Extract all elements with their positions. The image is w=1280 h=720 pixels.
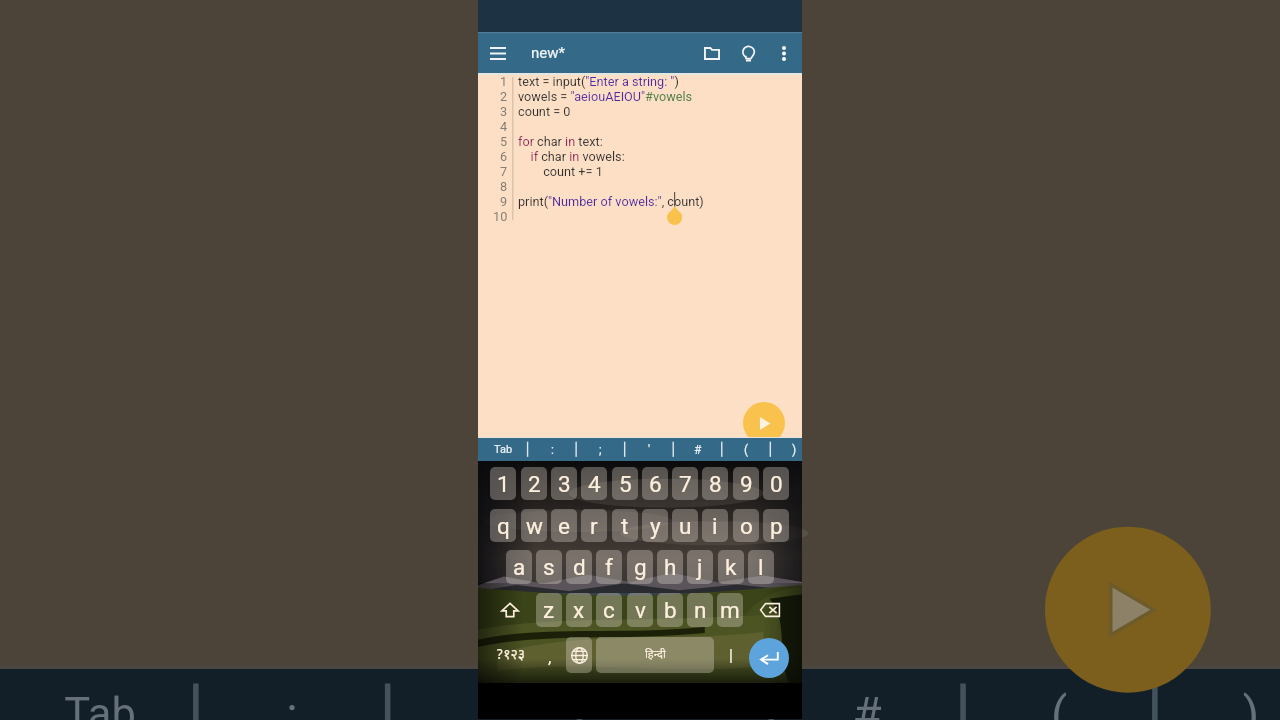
button[interactable]: p <box>763 509 789 542</box>
staticText: 8 <box>709 471 722 497</box>
button[interactable]: q <box>490 509 516 542</box>
button[interactable]: c <box>596 593 622 627</box>
staticText: z <box>543 597 555 623</box>
button[interactable]: l <box>748 550 774 584</box>
button[interactable]: ) <box>770 438 819 461</box>
staticText: h <box>664 554 677 580</box>
button[interactable]: d <box>566 550 592 584</box>
button[interactable]: 8 <box>702 467 728 500</box>
staticText: : <box>196 687 388 720</box>
button[interactable]: ( <box>722 438 771 461</box>
button[interactable]: j <box>687 550 713 584</box>
staticText: 1 <box>500 74 508 89</box>
button[interactable]: b <box>657 593 683 627</box>
staticText: 7 <box>500 164 508 179</box>
button[interactable]: w <box>521 509 547 542</box>
button[interactable]: n <box>687 593 713 627</box>
staticText: 5 <box>619 471 632 497</box>
button[interactable]: हिन्दी <box>596 637 714 673</box>
button[interactable]: h <box>657 550 683 584</box>
button[interactable]: Backspace <box>755 593 784 627</box>
button[interactable]: , <box>537 639 562 675</box>
button[interactable]: g <box>627 550 653 584</box>
staticText: print("Number of vowels:", count) <box>518 194 704 209</box>
staticText: u <box>679 513 692 539</box>
staticText: 0 <box>770 471 783 497</box>
button[interactable]: u <box>672 509 698 542</box>
button[interactable]: More options <box>770 39 798 67</box>
staticText: # <box>694 443 702 457</box>
button[interactable]: 2 <box>521 467 547 500</box>
button[interactable]: r <box>581 509 607 542</box>
staticText: ) <box>792 443 797 457</box>
button[interactable]: 3 <box>551 467 577 500</box>
staticText: r <box>590 513 598 539</box>
button[interactable]: f <box>596 550 622 584</box>
button[interactable]: Run <box>743 402 785 444</box>
button[interactable]: m <box>717 593 743 627</box>
button[interactable]: Shift <box>495 593 524 627</box>
staticText: 3 <box>558 471 571 497</box>
button[interactable]: Tab <box>479 438 528 461</box>
staticText: 4 <box>588 471 601 497</box>
staticText: y <box>650 513 661 539</box>
staticText: g <box>634 554 647 580</box>
button[interactable]: e <box>551 509 577 542</box>
button[interactable]: | <box>721 637 741 673</box>
button[interactable]: 9 <box>733 467 759 500</box>
staticText: b <box>664 597 677 623</box>
button[interactable]: 6 <box>642 467 668 500</box>
button[interactable]: 5 <box>612 467 638 500</box>
staticText: if char in vowels: <box>518 149 625 164</box>
button[interactable]: 0 <box>763 467 789 500</box>
button[interactable]: # <box>673 438 722 461</box>
button[interactable]: Change language <box>566 637 592 673</box>
staticText: 5 <box>500 134 508 149</box>
staticText: ) <box>1155 687 1280 720</box>
button[interactable]: Enter <box>749 638 789 678</box>
staticText: count = 0 <box>518 104 571 119</box>
staticText: o <box>740 513 753 539</box>
staticText: f <box>605 554 613 580</box>
staticText: Tab <box>4 689 196 720</box>
staticText: ; <box>388 687 580 720</box>
button[interactable]: s <box>536 550 562 584</box>
staticText: ' <box>579 687 771 720</box>
button[interactable]: ?१२३ <box>488 637 533 673</box>
button[interactable]: k <box>718 550 744 584</box>
button[interactable]: y <box>642 509 668 542</box>
staticText: i <box>712 513 718 539</box>
button[interactable]: : <box>528 438 577 461</box>
staticText: ?१२३ <box>496 646 526 664</box>
staticText: 8 <box>500 179 508 194</box>
button[interactable]: 1 <box>490 467 516 500</box>
staticText: | <box>729 646 733 665</box>
button[interactable]: o <box>733 509 759 542</box>
staticText: text = input("Enter a string: ") <box>518 74 679 89</box>
staticText: x <box>573 597 585 623</box>
staticText: a <box>513 554 526 580</box>
button[interactable]: Menu <box>484 39 512 67</box>
staticText: w <box>526 513 543 539</box>
button[interactable]: 4 <box>581 467 607 500</box>
staticText: q <box>497 513 510 539</box>
staticText: 9 <box>740 471 753 497</box>
button[interactable]: a <box>506 550 532 584</box>
button[interactable]: x <box>566 593 592 627</box>
button[interactable]: i <box>702 509 728 542</box>
staticText: 1 <box>497 471 510 497</box>
button[interactable]: Tips <box>734 39 762 67</box>
button[interactable]: t <box>612 509 638 542</box>
button[interactable]: z <box>536 593 562 627</box>
staticText: s <box>543 554 555 580</box>
staticText: ' <box>648 443 651 457</box>
staticText: : <box>551 443 554 457</box>
button[interactable]: ' <box>625 438 674 461</box>
button[interactable]: ; <box>576 438 625 461</box>
button[interactable]: v <box>627 593 653 627</box>
button[interactable]: 7 <box>672 467 698 500</box>
staticText: d <box>573 554 586 580</box>
staticText: 4 <box>500 119 508 134</box>
button[interactable]: Open file <box>698 39 726 67</box>
staticText: p <box>770 513 783 539</box>
